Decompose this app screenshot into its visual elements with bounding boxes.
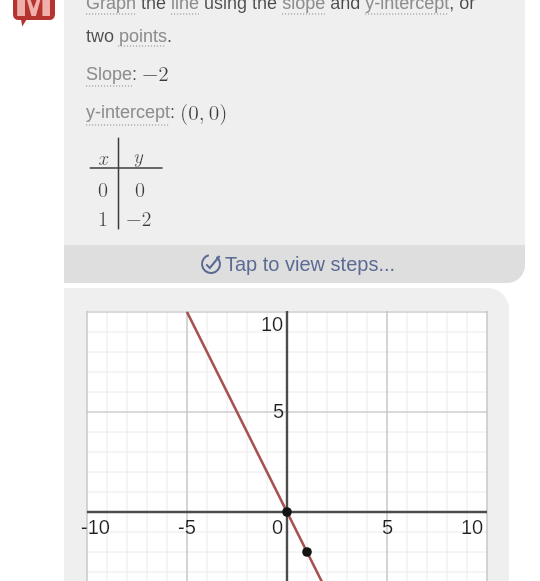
button[interactable]: -10 — [87, 311, 487, 581]
staticText: Tap to view steps... — [225, 253, 396, 275]
staticText: y-intercept: — [86, 102, 176, 122]
staticText: −2 — [126, 203, 152, 231]
staticText: -10 — [81, 516, 110, 538]
staticText: 10 — [261, 313, 284, 335]
staticText: 0 — [272, 516, 284, 538]
staticText: 10 — [461, 516, 484, 538]
staticText: 1 — [98, 203, 108, 231]
staticText: -5 — [178, 516, 196, 538]
staticText: 5 — [273, 400, 285, 422]
button[interactable]: Tap to view steps... — [64, 245, 525, 283]
staticText: x — [98, 142, 108, 170]
staticText: 0 — [98, 174, 108, 202]
button[interactable]: Mathway — [13, 0, 55, 20]
staticText: 5 — [382, 516, 394, 538]
staticText: Graph the line using the slope and y-int… — [86, 0, 478, 45]
staticText: −2 — [142, 57, 169, 87]
staticText: Slope: — [86, 64, 138, 84]
staticText: 0 — [135, 174, 145, 202]
staticText: y — [133, 140, 143, 168]
staticText: (0, 0) — [180, 96, 228, 126]
